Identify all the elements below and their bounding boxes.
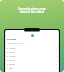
- button[interactable]: Account: [5, 46, 59, 50]
- button[interactable]: Storage: [5, 54, 59, 58]
- staticText: Privacy: [9, 51, 15, 53]
- button[interactable]: Backup: [5, 62, 59, 66]
- staticText: Help: [9, 67, 13, 69]
- button[interactable]: Privacy: [5, 50, 59, 54]
- staticText: Account: [9, 47, 16, 49]
- staticText: Securely store your data in the cloud: [18, 7, 46, 14]
- staticText: Storage: [9, 55, 16, 57]
- staticText: Backup: [9, 63, 16, 65]
- staticText: Devices: [9, 59, 16, 61]
- staticText: Settings: [7, 38, 17, 41]
- staticText: Manage your account: [7, 42, 25, 44]
- button[interactable]: Help: [5, 66, 59, 70]
- button[interactable]: Devices: [5, 58, 59, 62]
